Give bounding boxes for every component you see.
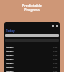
staticText: Metric (6, 61, 14, 64)
button[interactable]: Metric (6, 56, 58, 60)
staticText: Metric (6, 49, 14, 52)
button[interactable]: Metric (6, 68, 58, 72)
staticText: 24h (53, 45, 58, 48)
staticText: Today (6, 29, 15, 33)
staticText: Metric (6, 69, 14, 72)
staticText: Metric (6, 53, 14, 56)
staticText: 24h (53, 65, 58, 68)
button[interactable] (5, 34, 59, 37)
staticText: Metric (6, 57, 14, 60)
button[interactable]: Metric (6, 44, 58, 48)
button[interactable]: Metric (6, 60, 58, 64)
button[interactable]: Metric (6, 64, 58, 68)
staticText: 24h (53, 53, 58, 56)
button[interactable]: Metric (6, 48, 58, 52)
staticText: Metric (6, 45, 14, 48)
staticText: Metric (6, 65, 14, 68)
staticText: 24h (53, 49, 58, 52)
staticText: Predictable Progress (22, 3, 42, 12)
button[interactable]: Metric (6, 52, 58, 56)
staticText: 24h (53, 57, 58, 60)
staticText: 24h (53, 61, 58, 64)
staticText: 24h (53, 69, 58, 72)
